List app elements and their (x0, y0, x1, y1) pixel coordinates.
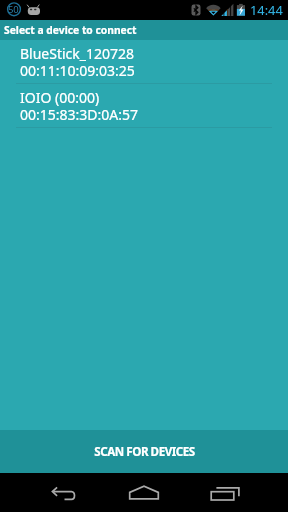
staticText: IOIO (00:00) 00:15:83:3D:0A:57 (20, 88, 139, 124)
staticText: 14:44 (250, 1, 283, 18)
button[interactable]: SCAN FOR DEVICES (0, 430, 288, 473)
button[interactable]: Recent apps (201, 473, 249, 512)
button[interactable]: Back (40, 473, 88, 512)
staticText: Select a device to connect (4, 23, 137, 37)
staticText: BlueStick_120728 00:11:10:09:03:25 (20, 44, 135, 80)
button[interactable]: BlueStick_120728 00:11:10:09:03:25 (0, 40, 288, 83)
button[interactable]: Home (120, 473, 168, 512)
staticText: SCAN FOR DEVICES (94, 444, 195, 460)
button[interactable]: IOIO (00:00) 00:15:83:3D:0A:57 (0, 84, 288, 127)
staticText: 50 (8, 3, 19, 16)
